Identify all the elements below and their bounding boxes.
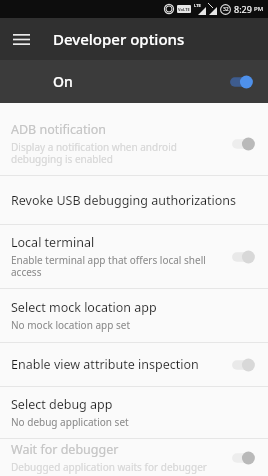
staticText: No debug application set	[11, 415, 129, 429]
staticText: Revoke USB debugging authorizations	[11, 192, 237, 209]
staticText: Select mock location app	[11, 299, 157, 316]
staticText: Wait for debugger	[11, 441, 119, 458]
button[interactable]: Select mock location app	[0, 289, 268, 342]
button[interactable]: Toggle setting	[229, 356, 257, 374]
button[interactable]: On	[0, 60, 268, 103]
button[interactable]: Select debug app	[0, 387, 268, 438]
staticText: 32	[223, 6, 229, 13]
staticText: Select debug app	[11, 396, 113, 413]
button[interactable]: Open navigation menu	[6, 24, 36, 54]
staticText: 8:29	[234, 3, 252, 15]
staticText: Debugged application waits for debugger	[11, 460, 207, 474]
staticText: Display a notification when android debu…	[11, 140, 177, 166]
button[interactable]: ADB notification	[0, 112, 268, 175]
staticText: VoLTE	[178, 7, 190, 12]
staticText: Enable terminal app that offers local sh…	[11, 253, 206, 279]
button[interactable]: Enable view attribute inspection	[0, 343, 268, 386]
staticText: No mock location app set	[11, 318, 130, 332]
staticText: Local terminal	[11, 234, 95, 251]
staticText: ADB notification	[11, 121, 107, 138]
button[interactable]: Local terminal	[0, 225, 268, 288]
button[interactable]: Revoke USB debugging authorizations	[0, 176, 268, 224]
button[interactable]: Toggle setting	[229, 248, 257, 266]
button[interactable]: Toggle setting	[229, 135, 257, 153]
staticText: Enable view attribute inspection	[11, 356, 199, 373]
button[interactable]: Toggle setting	[229, 449, 257, 467]
staticText: LTE	[194, 3, 201, 8]
staticText: On	[53, 72, 227, 91]
button[interactable]: Wait for debugger	[0, 439, 268, 476]
staticText: PM	[254, 5, 264, 13]
staticText: Developer options	[53, 29, 185, 49]
button[interactable]: Toggle setting	[227, 73, 255, 91]
